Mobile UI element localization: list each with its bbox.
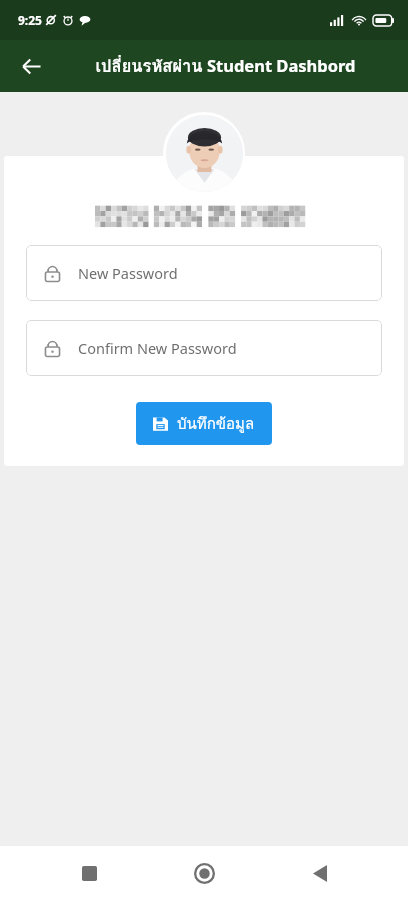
staticText: 9:25 bbox=[18, 12, 42, 28]
button[interactable]: บันทึกข้อมูล bbox=[136, 402, 272, 445]
staticText: เปลี่ยนรหัสผ่าน Student Dashbord bbox=[95, 53, 356, 79]
button[interactable]: Back bbox=[293, 846, 347, 900]
staticText: บันทึกข้อมูล bbox=[177, 412, 255, 436]
button[interactable]: Confirm New Password bbox=[26, 320, 382, 376]
button[interactable]: New Password bbox=[26, 245, 382, 301]
staticText: Confirm New Password bbox=[78, 338, 237, 358]
button[interactable]: Back bbox=[9, 44, 53, 88]
staticText: New Password bbox=[78, 263, 178, 283]
button[interactable]: Home bbox=[177, 846, 231, 900]
button[interactable]: Recent apps bbox=[62, 846, 116, 900]
